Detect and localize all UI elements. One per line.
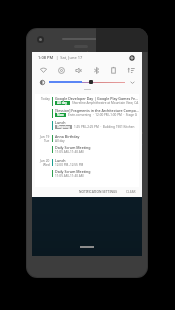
button[interactable]: Lunch	[52, 158, 139, 167]
staticText: 12:00 PM–12:55 PM	[55, 163, 84, 167]
button[interactable]: Brightness	[38, 78, 46, 86]
button[interactable]: Brightness slider	[49, 77, 125, 87]
button[interactable]: Today	[35, 94, 139, 187]
staticText: 1:08 PM	[38, 55, 54, 60]
staticText: Lunch	[55, 120, 66, 125]
button[interactable]: CLEAR	[125, 190, 137, 194]
button[interactable]: Lunch	[52, 120, 139, 130]
button[interactable]: Edit tiles	[124, 64, 138, 76]
staticText: CLEAR	[126, 190, 136, 194]
staticText: Ongoing	[57, 125, 70, 129]
button[interactable]: Settings	[127, 53, 136, 62]
staticText: Lunch	[55, 158, 66, 163]
staticText: Jun 20	[40, 159, 50, 163]
staticText: Anna Birthday	[55, 134, 80, 139]
button[interactable]: Bluetooth	[89, 64, 103, 76]
staticText: Daily Scrum Meeting	[55, 169, 91, 174]
staticText: Google Developer Day | Google Play Games…	[55, 96, 139, 101]
button[interactable]: Do not disturb	[71, 64, 85, 76]
button[interactable]: Location	[54, 64, 68, 76]
staticText: Today	[41, 97, 50, 101]
button[interactable]: Google Developer Day | Google Play Games…	[52, 96, 139, 106]
button[interactable]: Anna Birthday	[52, 134, 139, 143]
staticText: 11:05 AM–11:40 AM	[55, 150, 84, 154]
button[interactable]: Daily Scrum Meeting	[52, 145, 139, 154]
button[interactable]: [Session] Fragments in the Architecture …	[52, 108, 139, 118]
button[interactable]: Daily Scrum Meeting	[52, 169, 139, 178]
staticText: Now	[57, 113, 64, 117]
staticText: 11:05 AM–11:40 AM	[55, 174, 84, 178]
staticText: 1:25 PM–2:25 PM · Building 1901 Kitchen	[74, 125, 135, 129]
staticText: Wed	[43, 163, 50, 167]
staticText: Ervin.convening · 12:00 PM–1:00 PM · Sta…	[68, 113, 138, 117]
staticText: All day	[55, 139, 65, 143]
staticText: | Sat, June 17	[54, 55, 83, 60]
staticText: [Session] Fragments in the Architecture …	[55, 108, 139, 113]
button[interactable]: NOTIFICATION SETTINGS	[78, 190, 119, 194]
staticText: Jun 19	[40, 135, 50, 139]
staticText: Daily Scrum Meeting	[55, 145, 91, 150]
button[interactable]: Battery saver	[106, 64, 120, 76]
staticText: NOTIFICATION SETTINGS	[79, 190, 118, 194]
button[interactable]: Expand	[128, 78, 136, 86]
staticText: Shoreline Amphitheatre at Mountain View,…	[72, 101, 139, 105]
staticText: All day	[57, 101, 68, 105]
staticText: Tue	[44, 139, 50, 143]
button[interactable]: Wi-Fi	[36, 64, 50, 76]
